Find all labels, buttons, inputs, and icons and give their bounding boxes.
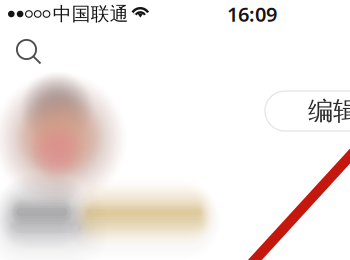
- staticText: 编辑资料: [308, 95, 350, 126]
- staticText: 16:09: [227, 1, 277, 27]
- staticText: 中国联通: [53, 2, 129, 25]
- button[interactable]: Search: [8, 31, 48, 71]
- button[interactable]: 编辑资料: [265, 91, 350, 131]
